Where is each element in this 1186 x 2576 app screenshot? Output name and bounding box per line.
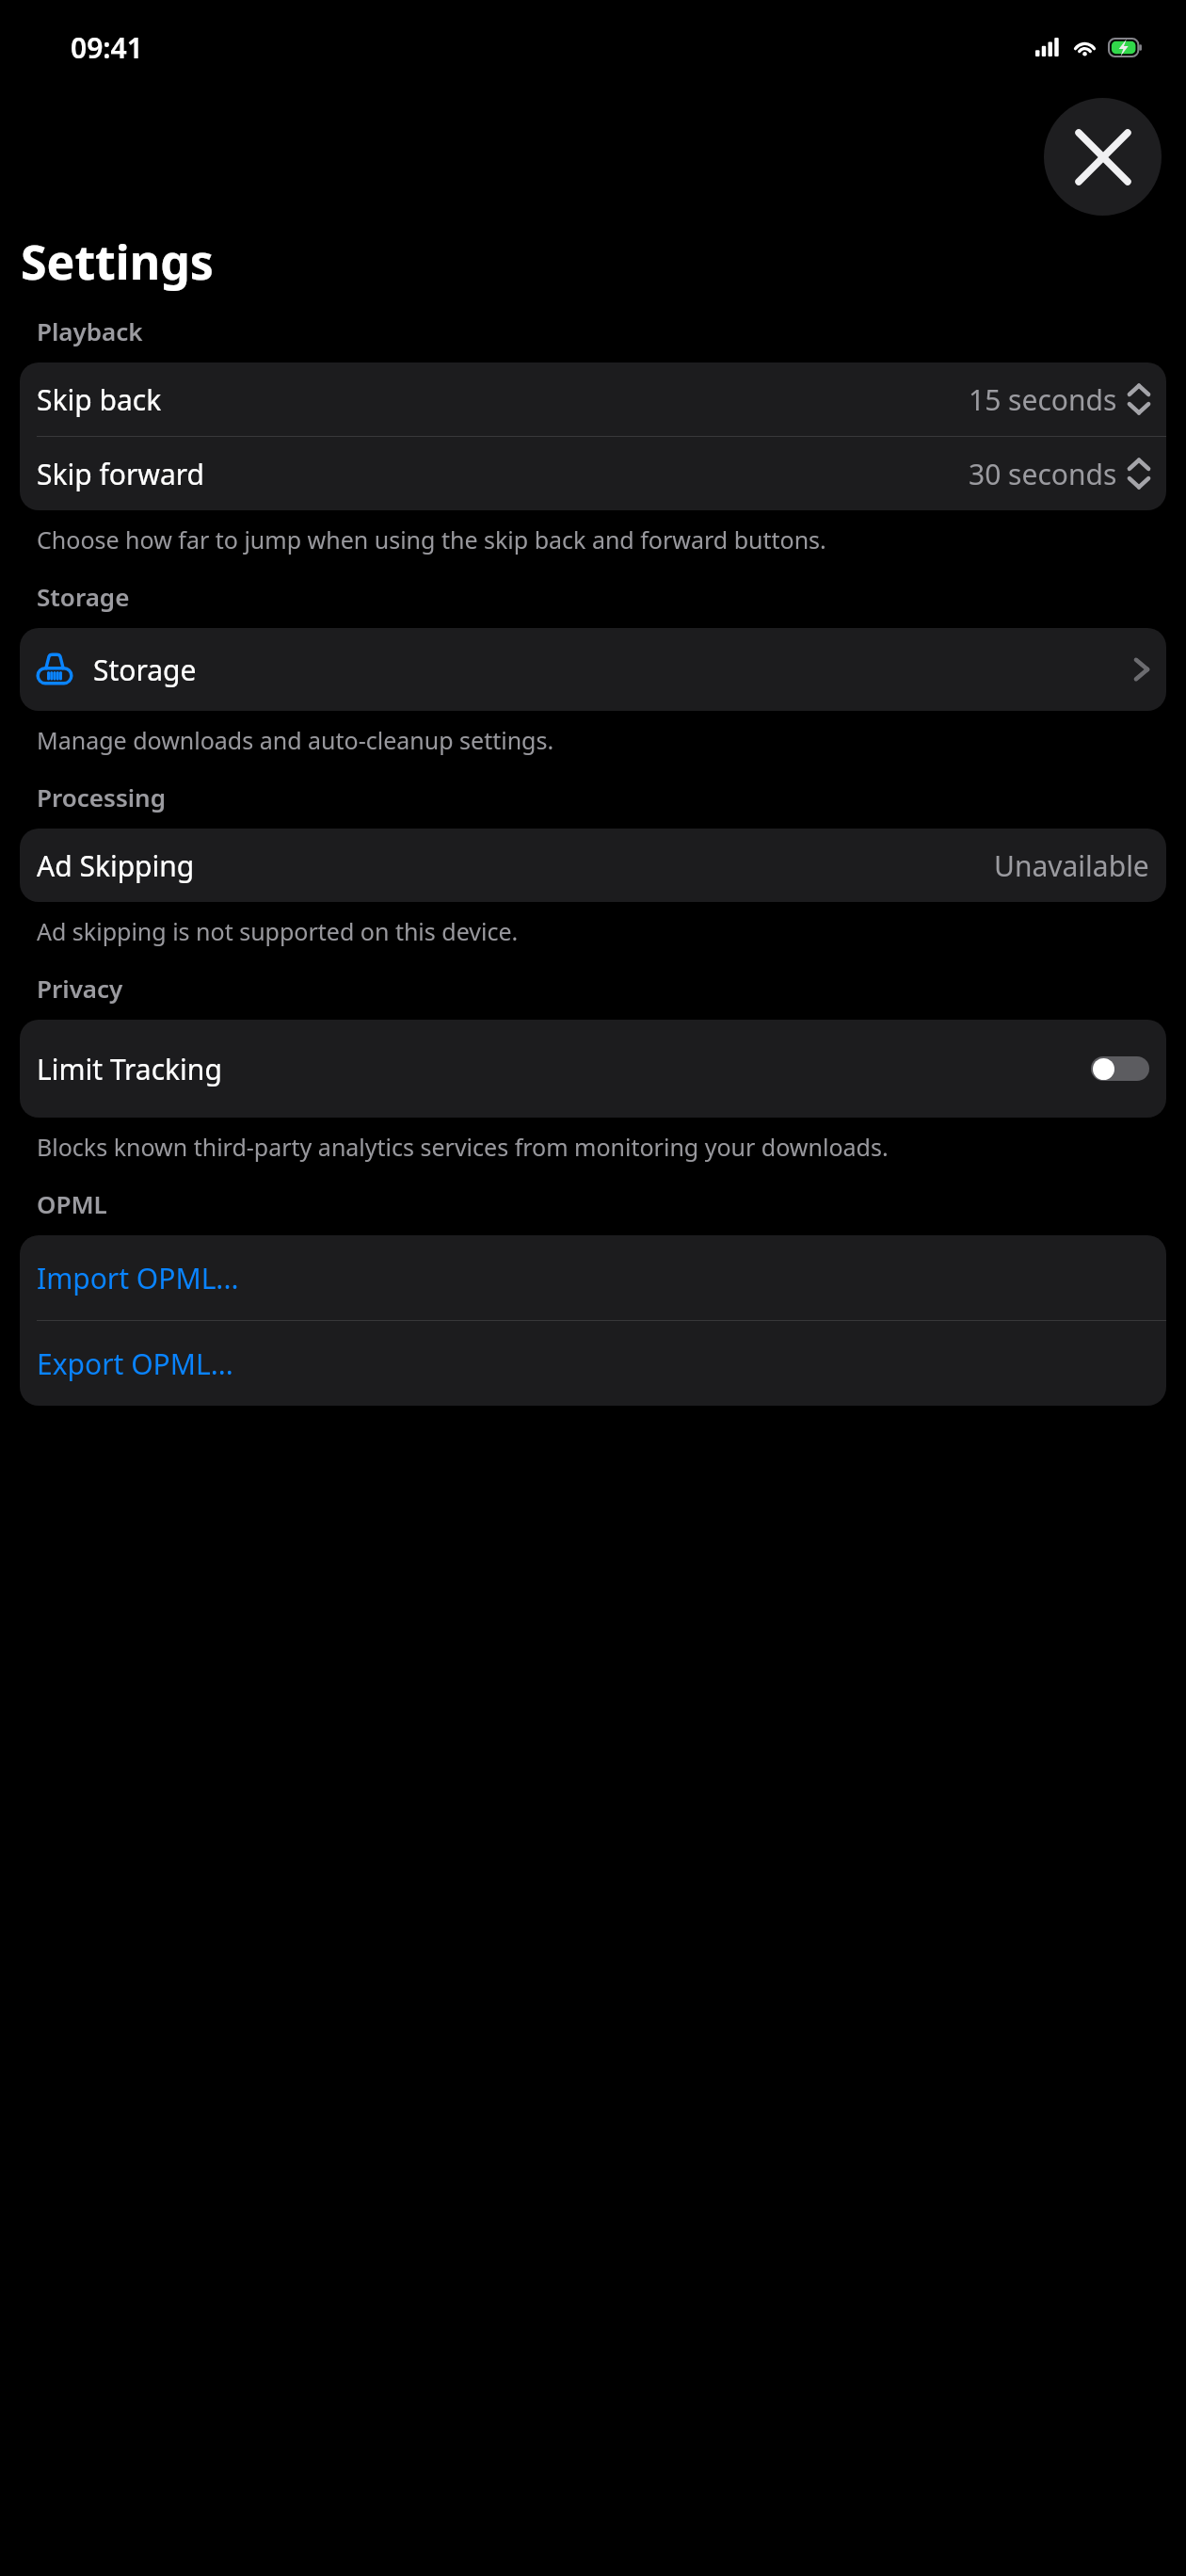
button[interactable]: Ad Skipping (20, 829, 1166, 902)
staticText: OPML (37, 1187, 107, 1220)
staticText: Storage (37, 580, 130, 613)
button[interactable]: Limit Tracking (20, 1020, 1166, 1118)
button[interactable]: Close (1044, 98, 1162, 216)
button[interactable]: Import OPML... (20, 1235, 1166, 1320)
staticText: Choose how far to jump when using the sk… (37, 523, 826, 555)
button[interactable]: Export OPML... (20, 1321, 1166, 1406)
button[interactable]: Skip back (20, 362, 1166, 436)
staticText: Blocks known third-party analytics servi… (37, 1131, 889, 1163)
staticText: Manage downloads and auto-cleanup settin… (37, 724, 554, 756)
staticText: Storage (93, 651, 197, 689)
staticText: Import OPML... (37, 1259, 239, 1297)
button[interactable]: Skip forward (20, 437, 1166, 510)
staticText: Limit Tracking (37, 1050, 222, 1088)
staticText: 09:41 (71, 28, 143, 67)
staticText: 30 seconds (969, 455, 1117, 493)
staticText: Unavailable (994, 846, 1149, 885)
staticText: Export OPML... (37, 1344, 233, 1383)
staticText: Settings (21, 230, 214, 294)
staticText: Privacy (37, 972, 123, 1005)
staticText: 15 seconds (969, 380, 1117, 419)
staticText: Processing (37, 781, 166, 813)
button[interactable]: Storage (20, 628, 1166, 711)
staticText: Ad Skipping (37, 846, 195, 885)
staticText: Playback (37, 314, 143, 347)
staticText: Ad skipping is not supported on this dev… (37, 915, 519, 947)
staticText: Skip back (37, 380, 162, 419)
staticText: Skip forward (37, 455, 204, 493)
